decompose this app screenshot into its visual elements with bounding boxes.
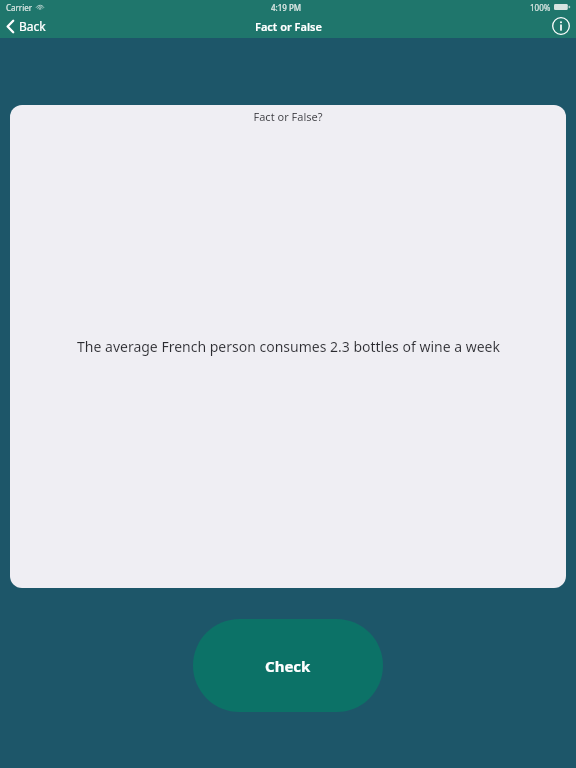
staticText: Back bbox=[19, 18, 46, 34]
staticText: 100% bbox=[530, 2, 551, 13]
staticText: Fact or False bbox=[255, 19, 322, 34]
staticText: Carrier bbox=[6, 2, 33, 13]
staticText: Check bbox=[265, 656, 311, 676]
button[interactable]: Check bbox=[193, 619, 383, 712]
staticText: 4:19 PM bbox=[271, 2, 302, 13]
button[interactable]: Back bbox=[0, 15, 56, 37]
staticText: Fact or False? bbox=[253, 109, 323, 124]
button[interactable]: Information bbox=[546, 15, 576, 37]
staticText: The average French person consumes 2.3 b… bbox=[77, 337, 500, 356]
